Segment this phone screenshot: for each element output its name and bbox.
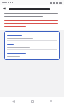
button[interactable] [7,51,57,58]
button[interactable]: Home [28,97,37,105]
button[interactable]: Recent apps [46,97,55,105]
button[interactable]: Back [2,6,7,11]
button[interactable] [7,33,57,42]
button[interactable] [7,42,57,51]
button[interactable]: Back [9,97,18,105]
